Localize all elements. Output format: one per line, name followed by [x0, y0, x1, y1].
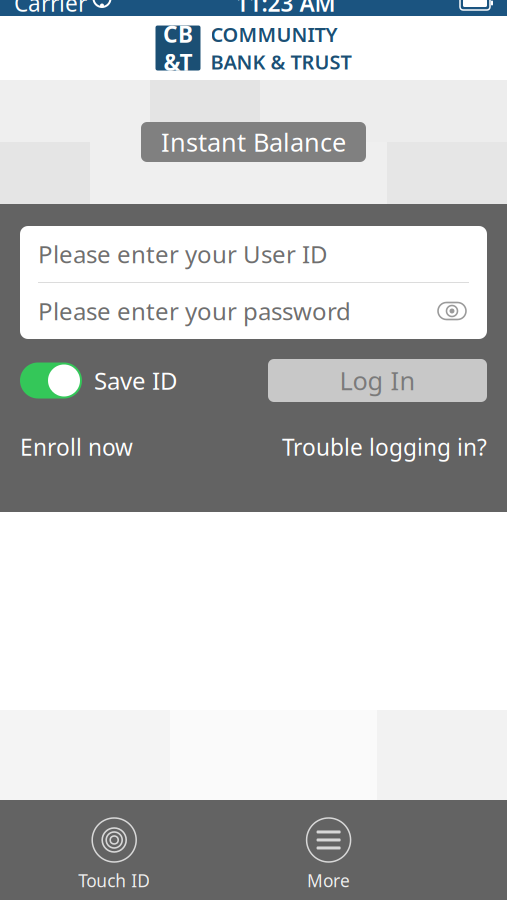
button[interactable]: Save ID: [20, 362, 178, 398]
staticText: More: [307, 869, 350, 892]
staticText: 11:23 AM: [235, 0, 335, 18]
button[interactable]: More: [307, 818, 351, 892]
staticText: Instant Balance: [161, 125, 346, 159]
button[interactable]: Show password: [435, 296, 469, 326]
staticText: Touch ID: [78, 869, 150, 892]
staticText: Please enter your User ID: [38, 238, 328, 270]
button[interactable]: Trouble logging in?: [282, 432, 487, 462]
button[interactable]: Instant Balance: [141, 122, 366, 162]
staticText: Save ID: [94, 365, 178, 396]
button[interactable]: Log In: [268, 359, 487, 402]
staticText: CB: [163, 19, 193, 49]
staticText: Enroll now: [20, 432, 133, 462]
button[interactable]: Enroll now: [20, 432, 133, 462]
button[interactable]: Touch ID: [78, 818, 150, 892]
staticText: COMMUNITY: [210, 21, 337, 47]
staticText: &T: [163, 47, 192, 77]
staticText: Trouble logging in?: [282, 432, 487, 462]
staticText: Please enter your password: [38, 295, 351, 327]
staticText: BANK & TRUST: [210, 48, 351, 75]
staticText: Carrier: [14, 0, 87, 18]
staticText: Log In: [339, 364, 415, 397]
